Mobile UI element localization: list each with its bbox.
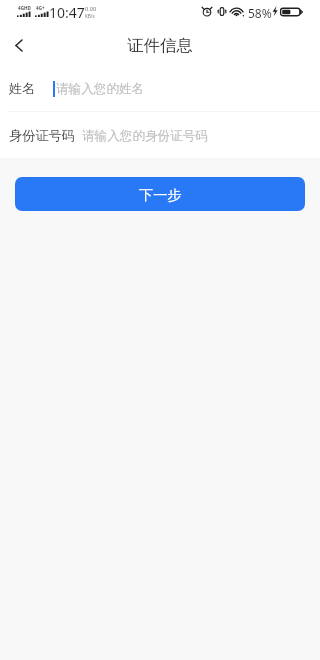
staticText: 下一步 [139, 186, 182, 204]
staticText: 4GHD [18, 5, 31, 11]
button[interactable]: 身份证号码 [0, 112, 320, 158]
button[interactable]: 下一步 [15, 177, 305, 211]
staticText: 0.00 [85, 5, 97, 13]
staticText: KB/s [85, 13, 95, 19]
staticText: 4G+ [36, 5, 45, 11]
staticText: 姓名 [9, 80, 36, 97]
staticText: 证件信息 [127, 35, 193, 56]
staticText: 身份证号码 [9, 127, 75, 144]
staticText: 请输入您的身份证号码 [82, 128, 208, 144]
staticText: 58% [248, 5, 272, 21]
staticText: 请输入您的姓名 [56, 81, 145, 97]
button[interactable]: 姓名 [0, 65, 320, 111]
staticText: 10:47 [49, 3, 85, 22]
button[interactable]: Back [4, 26, 34, 64]
